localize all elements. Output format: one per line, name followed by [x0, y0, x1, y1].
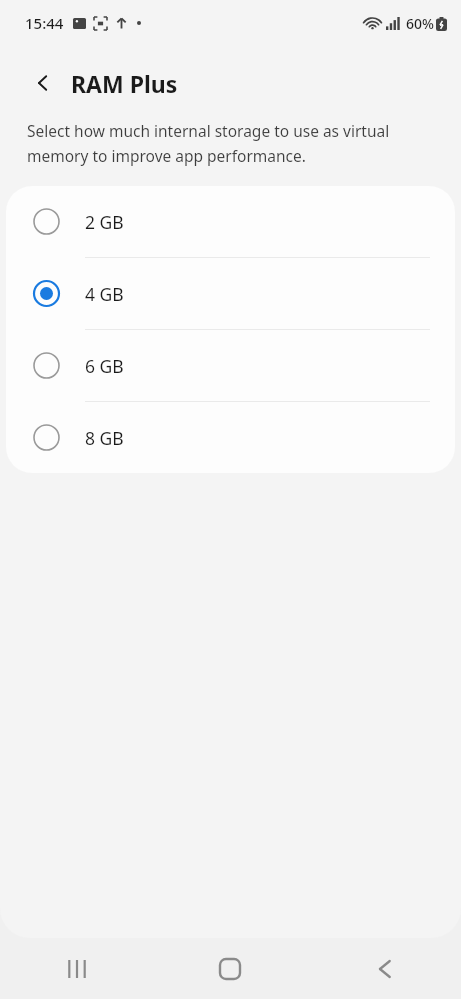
staticText: RAM Plus [71, 68, 178, 99]
staticText: 60% [406, 14, 434, 33]
button[interactable]: Back [307, 938, 461, 999]
button[interactable]: Home [153, 938, 307, 999]
staticText: 8 GB [85, 426, 124, 450]
staticText: Select how much internal storage to use … [27, 120, 436, 167]
staticText: 15:44 [25, 13, 64, 33]
button[interactable]: 8 GB [6, 402, 455, 473]
button[interactable]: 2 GB [6, 186, 455, 257]
button[interactable]: Navigate up [21, 61, 65, 105]
button[interactable]: Recent apps [0, 938, 153, 999]
staticText: 6 GB [85, 354, 124, 378]
button[interactable]: 6 GB [6, 330, 455, 401]
staticText: 4 GB [85, 282, 124, 306]
button[interactable]: 4 GB [6, 258, 455, 329]
staticText: 2 GB [85, 210, 124, 234]
